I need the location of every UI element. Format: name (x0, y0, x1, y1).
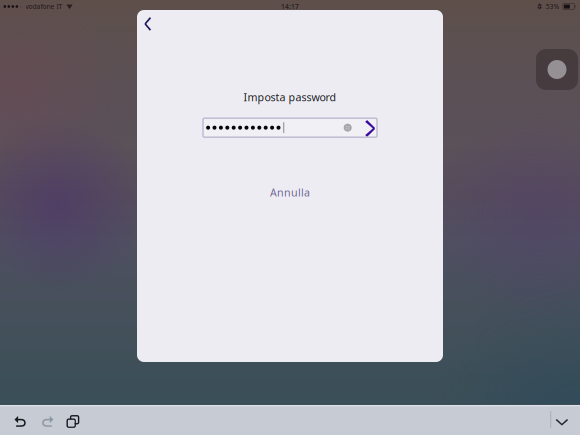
staticText: Imposta password (243, 90, 336, 104)
button[interactable]: Annulla (270, 185, 310, 199)
button[interactable]: Undo (0, 407, 34, 432)
button[interactable]: Redo (34, 407, 60, 432)
button[interactable]: Paste (60, 407, 87, 432)
button[interactable]: Submit (365, 120, 375, 135)
button[interactable]: Hide keyboard (551, 404, 572, 435)
staticText: 53% (546, 2, 560, 11)
button[interactable]: Back (137, 10, 163, 42)
staticText: 14:17 (281, 2, 299, 11)
staticText: Annulla (270, 185, 310, 199)
button[interactable]: Clear text (344, 124, 352, 132)
button[interactable]: AssistiveTouch (536, 49, 578, 90)
staticText: vodafone IT (26, 2, 63, 11)
